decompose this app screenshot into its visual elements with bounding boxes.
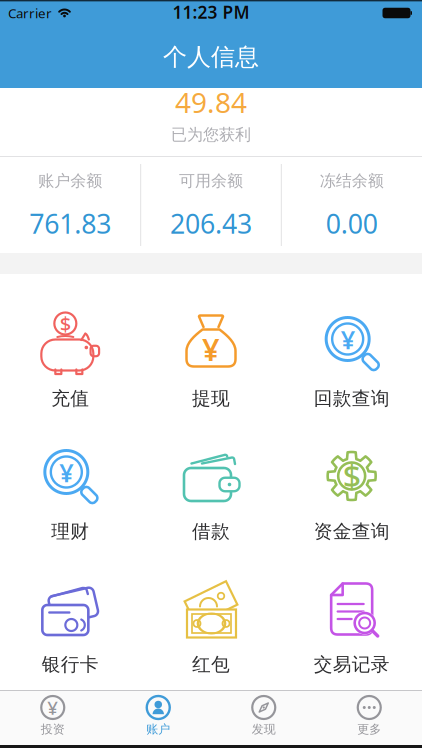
button[interactable]: $ [281,410,422,543]
staticText: 借款 [192,520,230,543]
staticText: 银行卡 [42,653,99,676]
button[interactable]: $ [0,277,141,410]
staticText: $ [60,310,71,337]
button[interactable]: 更多 [316,691,422,745]
button[interactable]: 账户 [105,691,211,745]
staticText: 提现 [192,387,230,410]
button[interactable]: ¥ [0,691,105,745]
staticText: 可用余额 [179,171,243,191]
staticText: $ [343,455,361,497]
button[interactable]: ¥ [281,277,422,410]
staticText: 冻结余额 [320,171,384,191]
staticText: 红包 [192,653,230,676]
staticText: ¥ [47,695,58,720]
staticText: 回款查询 [314,387,390,410]
staticText: 更多 [357,722,381,737]
staticText: 206.43 [170,206,252,241]
button[interactable]: 红包 [141,543,281,676]
staticText: ¥ [59,456,73,489]
staticText: 已为您获利 [171,125,251,144]
staticText: 0.00 [326,206,378,241]
button[interactable]: 发现 [211,691,316,745]
button[interactable]: 银行卡 [0,543,141,676]
button[interactable]: 借款 [141,410,281,543]
staticText: 投资 [41,722,65,737]
staticText: 充值 [51,387,89,410]
button[interactable]: 交易记录 [281,543,422,676]
staticText: ¥ [202,329,220,369]
button[interactable]: ¥ [0,410,141,543]
staticText: Carrier [8,4,52,22]
staticText: 资金查询 [314,520,390,543]
staticText: ¥ [341,323,355,356]
staticText: 交易记录 [314,653,390,676]
staticText: 理财 [51,520,89,543]
staticText: 761.83 [29,206,111,241]
staticText: 11:23 PM [172,0,249,23]
staticText: 发现 [252,722,276,737]
staticText: 账户 [146,722,170,737]
staticText: 49.84 [175,84,247,121]
staticText: 个人信息 [163,42,259,72]
staticText: 账户余额 [38,171,102,191]
button[interactable]: ¥ [141,277,281,410]
